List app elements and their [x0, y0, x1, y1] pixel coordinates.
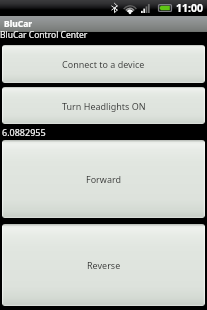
staticText: Connect to a device: [62, 58, 145, 70]
button[interactable]: Turn Headlights ON: [2, 87, 205, 124]
other: Battery full: [158, 4, 172, 12]
other: Wi-Fi signal: [124, 3, 136, 14]
staticText: 11:00: [176, 1, 203, 15]
other: Mobile signal: [141, 4, 150, 13]
button[interactable]: Forward: [2, 140, 205, 218]
staticText: 6.0882955: [2, 126, 46, 138]
other: Bluetooth on: [111, 3, 118, 13]
button[interactable]: Reverse: [2, 224, 205, 306]
staticText: BluCar: [4, 18, 33, 30]
staticText: Turn Headlights ON: [62, 100, 146, 112]
staticText: Forward: [86, 173, 122, 185]
button[interactable]: Connect to a device: [2, 45, 205, 83]
staticText: Reverse: [87, 259, 121, 271]
staticText: BluCar Control Center: [0, 29, 88, 41]
